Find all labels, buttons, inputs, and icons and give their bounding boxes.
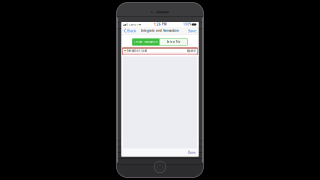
button[interactable]: Save [185, 28, 198, 34]
staticText: Create Transaction [134, 40, 158, 44]
button[interactable]: Transaction Load [122, 48, 197, 55]
staticText: Expand [187, 49, 196, 52]
button[interactable]: Done [186, 149, 198, 156]
staticText: Select File [167, 40, 181, 44]
button[interactable]: Select File [160, 39, 188, 45]
staticText: Carrier [129, 23, 138, 26]
button[interactable]: Create Transaction [132, 39, 160, 45]
staticText: Save [188, 28, 196, 33]
staticText: 100% [183, 23, 191, 26]
staticText: Transaction Load [126, 49, 147, 52]
staticText: Integrate and Transaction [141, 29, 179, 32]
staticText: Done [188, 151, 196, 154]
staticText: 1:26 PM [154, 23, 166, 26]
button[interactable]: Back [121, 28, 139, 34]
staticText: Back [127, 28, 136, 33]
